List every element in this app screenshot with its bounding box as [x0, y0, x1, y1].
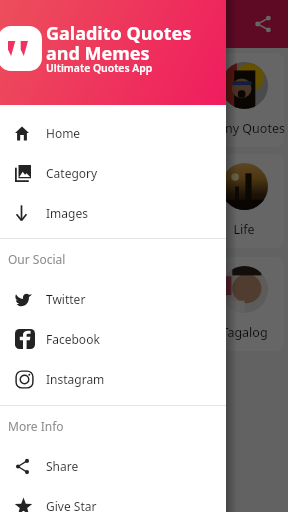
staticText: Give Star [46, 498, 97, 512]
button[interactable]: Life [200, 154, 288, 248]
button[interactable]: Tagalog [200, 257, 288, 351]
staticText: Life [233, 221, 255, 238]
button[interactable]: Bisaya [28, 257, 116, 351]
button[interactable]: Share [0, 446, 226, 486]
button[interactable]: Sad Quotes [28, 154, 116, 248]
button[interactable]: Instagram [0, 359, 226, 399]
staticText: and Memes [46, 41, 150, 66]
staticText: Galadito Quotes [46, 21, 192, 46]
staticText: Our Social [8, 251, 66, 267]
button[interactable]: Give Star [0, 486, 226, 512]
staticText: Twitter [46, 291, 86, 307]
button[interactable]: Facebook [0, 319, 226, 359]
button[interactable]: Images [0, 193, 226, 233]
button[interactable]: Twitter [0, 279, 226, 319]
staticText: Images [46, 205, 88, 221]
staticText: Love Quotes [35, 120, 109, 137]
staticText: Category [46, 165, 98, 181]
staticText: Funny Quotes [203, 120, 285, 137]
button[interactable]: Home [0, 113, 226, 153]
staticText: Home [46, 125, 81, 141]
staticText: Share [46, 458, 79, 474]
staticText: Facebook [46, 331, 100, 347]
button[interactable]: Category [0, 153, 226, 193]
staticText: Instagram [46, 371, 105, 387]
staticText: Tagalog [221, 324, 268, 341]
staticText: More Info [8, 418, 64, 434]
staticText: Quotes [14, 13, 70, 35]
staticText: Bisaya [53, 324, 91, 341]
staticText: Ultimate Quotes App [46, 61, 153, 75]
button[interactable]: Share [247, 8, 279, 40]
button[interactable]: Love Quotes [28, 53, 116, 147]
button[interactable]: Funny Quotes [200, 53, 288, 147]
